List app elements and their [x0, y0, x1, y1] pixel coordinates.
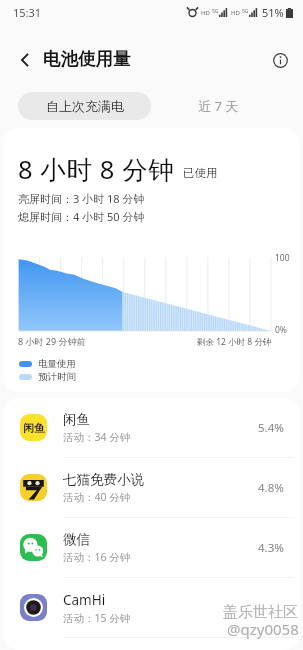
- button[interactable]: Back: [6, 41, 44, 79]
- staticText: 闲鱼: [23, 421, 45, 435]
- staticText: HD: [231, 9, 240, 17]
- button[interactable]: 近 7 天: [163, 92, 273, 120]
- staticText: 亮屏时间：3 小时 18 分钟: [18, 191, 145, 206]
- staticText: 100: [275, 252, 290, 264]
- staticText: 盖乐世社区: [223, 603, 298, 622]
- button[interactable]: 自上次充满电: [18, 92, 151, 120]
- staticText: 8 小时 29 分钟前: [18, 335, 86, 347]
- staticText: 七猫免费小说: [63, 471, 144, 488]
- button[interactable]: 微信: [3, 518, 294, 577]
- staticText: 4.3%: [258, 540, 284, 556]
- staticText: 活动：15 分钟: [63, 611, 131, 625]
- staticText: 0%: [275, 324, 287, 336]
- staticText: 已使用: [183, 166, 218, 180]
- staticText: 活动：34 分钟: [63, 430, 131, 444]
- staticText: 15:31: [13, 5, 42, 20]
- staticText: 8 小时 8 分钟: [18, 152, 175, 187]
- staticText: 活动：40 分钟: [63, 490, 131, 504]
- staticText: 电池使用量: [43, 48, 131, 70]
- staticText: 微信: [63, 531, 90, 548]
- staticText: 预计时间: [38, 371, 76, 383]
- staticText: 闲鱼: [63, 411, 90, 428]
- staticText: 电量使用: [38, 358, 76, 370]
- staticText: 剩余 12 小时 8 分钟: [197, 336, 272, 348]
- staticText: 4.8%: [258, 480, 284, 496]
- staticText: 51%: [262, 5, 284, 20]
- staticText: 5G: [242, 8, 249, 15]
- staticText: @qzy0058: [227, 619, 299, 639]
- button[interactable]: CamHi: [3, 578, 294, 637]
- staticText: 活动：16 分钟: [63, 550, 131, 564]
- staticText: HD: [201, 9, 210, 17]
- staticText: 近 7 天: [198, 97, 239, 115]
- staticText: 5.4%: [258, 420, 284, 436]
- button[interactable]: 闲鱼: [3, 398, 294, 457]
- staticText: 熄屏时间：4 小时 50 分钟: [18, 209, 145, 224]
- staticText: CamHi: [63, 591, 106, 609]
- button[interactable]: 七猫免费小说: [3, 458, 294, 517]
- button[interactable]: Info: [261, 41, 299, 79]
- staticText: 自上次充满电: [46, 98, 124, 114]
- staticText: 5G: [212, 8, 219, 15]
